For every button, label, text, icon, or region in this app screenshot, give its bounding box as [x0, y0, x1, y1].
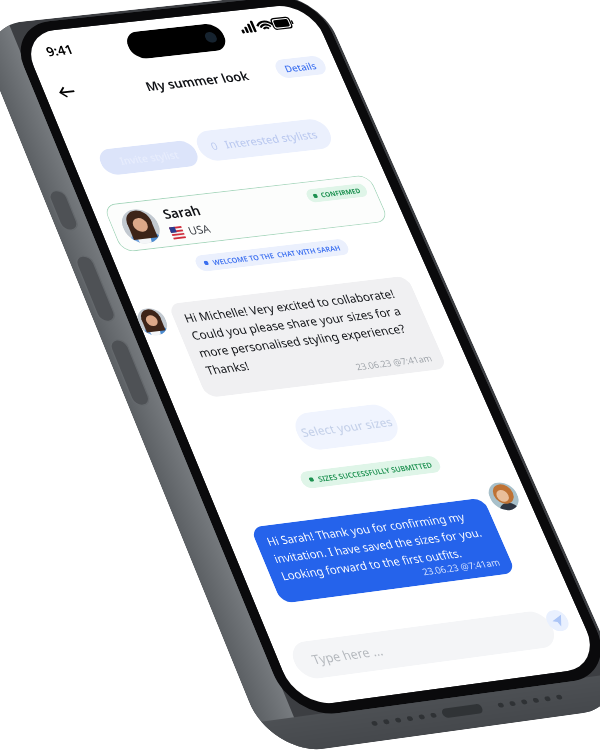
- staticText: Hi Sarah! Thank you for confirming my in…: [88, 601, 326, 655]
- button[interactable]: 0: [192, 150, 345, 186]
- button[interactable]: Details: [316, 77, 373, 100]
- staticText: 23.06.23 @7:41am: [239, 655, 326, 669]
- staticText: Hi Michelle! Very excited to collaborate…: [99, 349, 349, 427]
- button[interactable]: Type here ...: [64, 718, 351, 752]
- staticText: Sarah: [123, 229, 165, 249]
- staticText: SIZES SUCCESSFULLY SUBMITTED: [170, 544, 298, 555]
- button[interactable]: Send: [348, 720, 371, 743]
- staticText: Select your sizes: [173, 489, 275, 507]
- staticText: 23.06.23 @7:41am: [262, 427, 349, 441]
- staticText: Invite stylist: [100, 166, 167, 182]
- button[interactable]: Back: [58, 72, 88, 102]
- staticText: Details: [326, 81, 363, 96]
- button[interactable]: Invite stylist: [78, 158, 188, 189]
- staticText: My summer look: [163, 81, 282, 101]
- button[interactable]: Select your sizes: [168, 477, 280, 519]
- button[interactable]: Sarah: [61, 221, 368, 277]
- staticText: WELCOME TO THE CHAT WITH SARAH: [155, 294, 301, 305]
- staticText: CONFIRMED: [305, 233, 351, 243]
- staticText: 9:41: [69, 28, 99, 48]
